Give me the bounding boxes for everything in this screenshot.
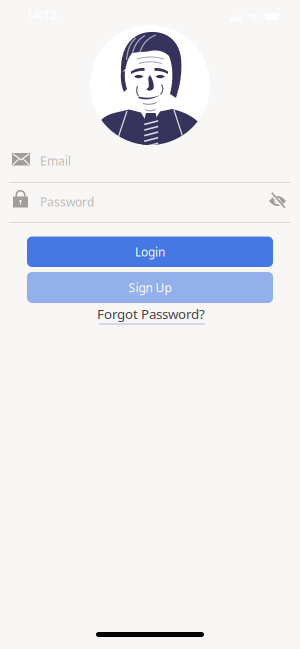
staticText: Password xyxy=(40,194,94,210)
staticText: Login xyxy=(135,244,165,260)
button[interactable]: Email xyxy=(9,150,291,183)
staticText: Email xyxy=(40,153,71,169)
button[interactable]: Forgot Password? xyxy=(97,305,205,323)
staticText: 14:12 xyxy=(26,7,57,23)
staticText: Forgot Password? xyxy=(97,305,205,323)
staticText: Sign Up xyxy=(128,279,171,295)
button[interactable]: Password xyxy=(9,186,291,223)
button[interactable]: Sign Up xyxy=(27,272,273,303)
button[interactable]: Show password xyxy=(269,194,286,207)
button[interactable]: Login xyxy=(27,236,273,267)
